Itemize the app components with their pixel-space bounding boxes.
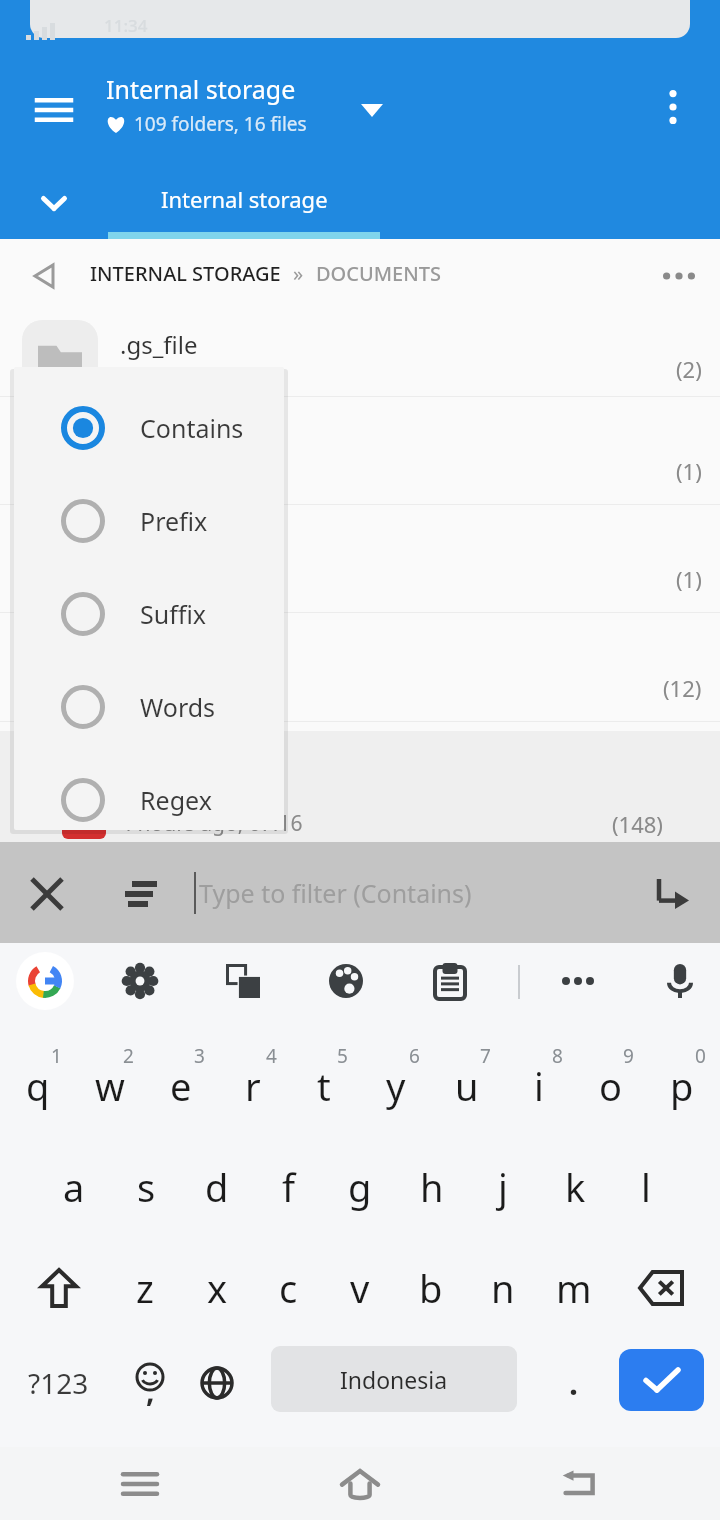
staticText: c (279, 1262, 298, 1314)
button[interactable]: Back (548, 1447, 612, 1520)
button[interactable]: Internal storage (108, 172, 380, 239)
button[interactable]: f (256, 1139, 322, 1235)
staticText: f (282, 1161, 296, 1213)
button[interactable]: Apply filter (646, 867, 700, 921)
button[interactable]: d (184, 1139, 250, 1235)
button[interactable]: x (184, 1240, 250, 1336)
button[interactable]: Expand tabs (24, 180, 84, 226)
staticText: Type to filter (Contains) (199, 876, 472, 910)
button[interactable]: DOCUMENTS (316, 260, 442, 287)
button[interactable]: Translate (214, 952, 272, 1010)
button[interactable]: Filter mode (114, 867, 168, 921)
button[interactable]: Indonesia (271, 1346, 517, 1412)
button[interactable]: i (506, 1038, 572, 1134)
button[interactable]: v (327, 1240, 393, 1336)
button[interactable]: Words (14, 660, 284, 753)
staticText: 1 (51, 1043, 62, 1069)
staticText: Internal storage (106, 72, 296, 106)
button[interactable]: Voice input (651, 952, 709, 1010)
button[interactable] (0, 722, 720, 830)
staticText: DOCUMENTS (316, 260, 442, 287)
staticText: s (137, 1161, 156, 1213)
staticText: Indonesia (340, 1364, 448, 1395)
button[interactable]: m (541, 1240, 607, 1336)
button[interactable]: Home (328, 1447, 392, 1520)
button[interactable]: o (577, 1038, 643, 1134)
button[interactable]: Prefix (14, 474, 284, 567)
button[interactable]: …e (0, 397, 720, 505)
staticText: (12) (663, 673, 702, 703)
button[interactable]: More options (648, 82, 698, 132)
button[interactable]: INTERNAL STORAGE (90, 260, 281, 287)
staticText: (148) (612, 809, 663, 839)
button[interactable]: Regex (14, 753, 284, 830)
button[interactable]: y (363, 1038, 429, 1134)
button[interactable]: k (542, 1139, 608, 1235)
button[interactable]: Clipboard (421, 952, 479, 1010)
button[interactable]: g (327, 1139, 393, 1235)
button[interactable]: Shift (24, 1240, 94, 1336)
button[interactable]: Breadcrumb options (654, 252, 704, 300)
button[interactable]: n (470, 1240, 536, 1336)
button[interactable]: 4 hours ago, 07:16 (0, 731, 720, 842)
staticText: (1) (676, 456, 702, 486)
staticText: 4 (266, 1043, 277, 1069)
button[interactable]: Contains (14, 381, 284, 474)
staticText: k (565, 1161, 586, 1213)
button[interactable]: r (220, 1038, 286, 1134)
button[interactable]: Backspace (626, 1240, 696, 1336)
staticText: a (63, 1161, 85, 1213)
button[interactable]: Keyboard settings (111, 952, 169, 1010)
button[interactable]: More keyboard options (549, 952, 607, 1010)
button[interactable]: .gs_file (0, 300, 720, 397)
staticText: 3 (194, 1043, 205, 1069)
button[interactable]: Themes (317, 952, 375, 1010)
button[interactable]: Enter (619, 1349, 704, 1411)
staticText: m (556, 1262, 592, 1314)
staticText: , (146, 1370, 155, 1411)
staticText: 7 (480, 1043, 491, 1069)
staticText: b (419, 1262, 443, 1314)
button[interactable]: j (470, 1139, 536, 1235)
button[interactable]: Up one level (18, 252, 70, 300)
button[interactable]: Recent apps (108, 1447, 172, 1520)
staticText: Prefix (140, 504, 208, 538)
staticText: Contains (140, 411, 244, 445)
button[interactable]: t (291, 1038, 357, 1134)
staticText: 11:34 (104, 14, 148, 37)
staticText: Suffix (140, 597, 207, 631)
button[interactable]: a (41, 1139, 107, 1235)
button[interactable]: …orage (0, 505, 720, 613)
staticText: 9 (623, 1043, 634, 1069)
staticText: o (599, 1060, 622, 1112)
staticText: …e (120, 425, 153, 458)
button[interactable]: s (113, 1139, 179, 1235)
button[interactable]: . (540, 1335, 606, 1431)
staticText: 109 folders, 16 files (134, 111, 307, 137)
button[interactable]: Open navigation drawer (22, 78, 86, 142)
button[interactable]: u (434, 1038, 500, 1134)
button[interactable]: Close filter (20, 867, 74, 921)
button[interactable]: b (398, 1240, 464, 1336)
staticText: g (348, 1161, 372, 1213)
staticText: 0 (695, 1043, 706, 1069)
button[interactable]: c (255, 1240, 321, 1336)
staticText: (2) (676, 354, 702, 384)
button[interactable]: l (613, 1139, 679, 1235)
button[interactable]: Google search (16, 952, 74, 1010)
button[interactable]: ?123 (10, 1335, 106, 1431)
button[interactable]: (12) (0, 614, 720, 722)
button[interactable]: Change storage (350, 88, 394, 132)
staticText: INTERNAL STORAGE (90, 260, 281, 287)
staticText: r (245, 1060, 261, 1112)
button[interactable]: Suffix (14, 567, 284, 660)
button[interactable]: Emoji and comma (116, 1335, 184, 1431)
button[interactable]: h (399, 1139, 465, 1235)
button[interactable]: q (5, 1038, 71, 1134)
button[interactable]: e (148, 1038, 214, 1134)
button[interactable]: Change language (186, 1335, 248, 1431)
button[interactable]: z (112, 1240, 178, 1336)
button[interactable]: w (77, 1038, 143, 1134)
button[interactable]: p (649, 1038, 715, 1134)
